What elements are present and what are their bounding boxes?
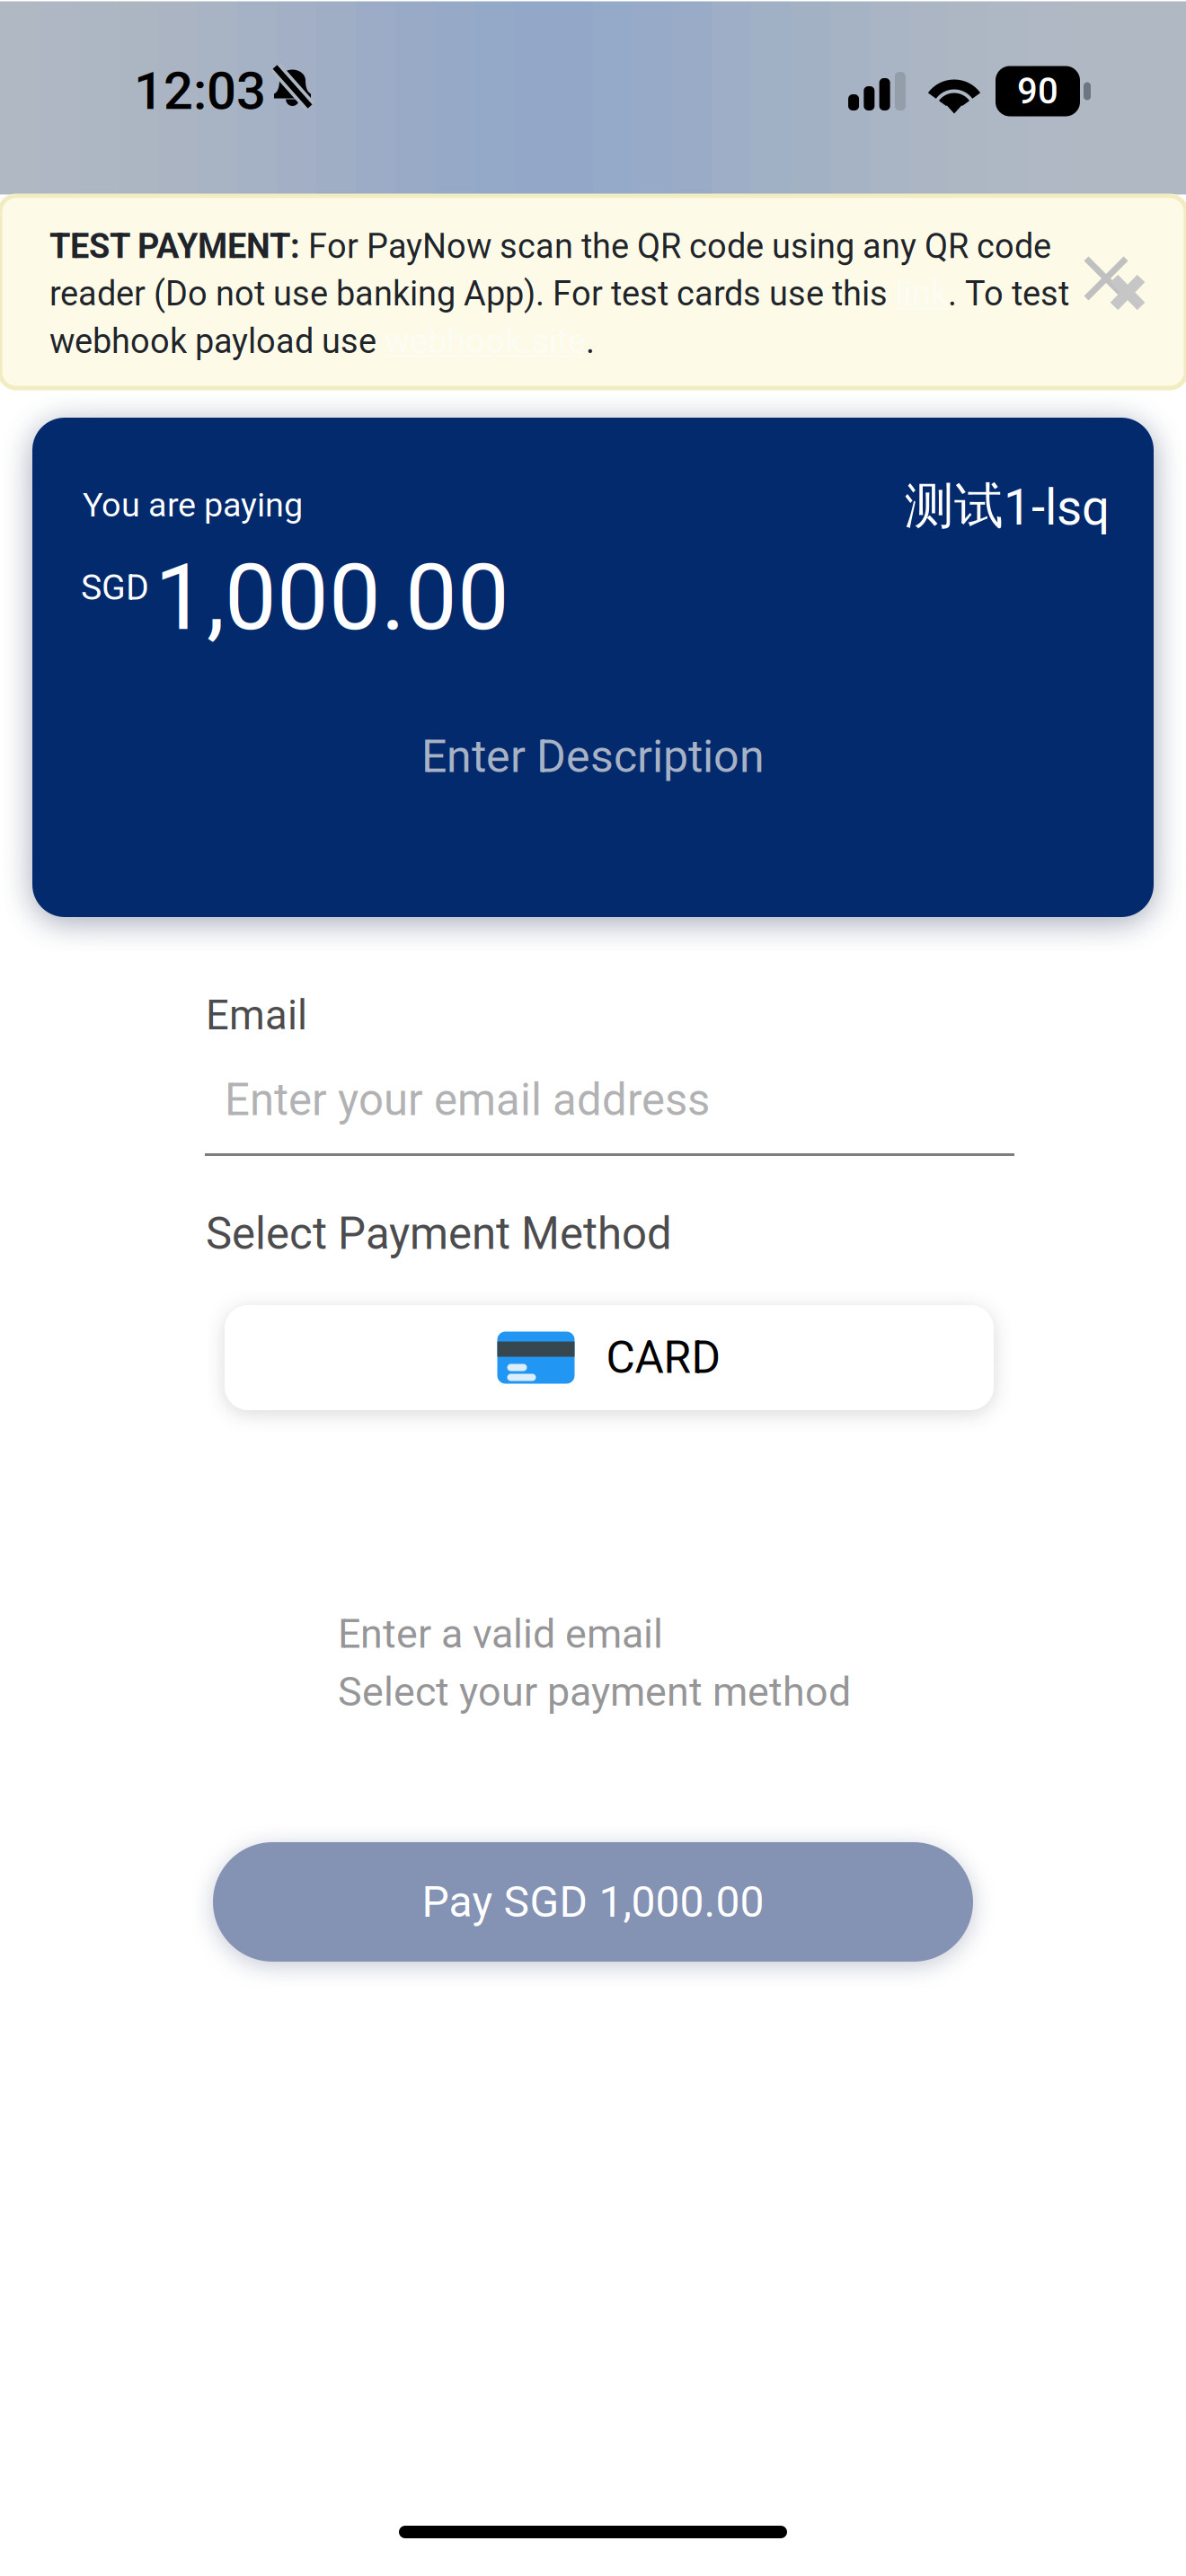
staticText: 90 [1017, 70, 1058, 112]
staticText: Enter Description [421, 730, 765, 783]
staticText: Select your payment method [338, 1668, 851, 1716]
staticText: Select Payment Method [206, 1208, 672, 1260]
staticText: Pay SGD 1,000.00 [422, 1877, 764, 1927]
staticText: TEST PAYMENT: For PayNow scan the QR cod… [49, 226, 1069, 361]
staticText: Email [206, 992, 307, 1039]
button[interactable]: CARD [225, 1305, 994, 1410]
staticText: 12:03 [134, 61, 266, 122]
staticText: Enter your email address [225, 1074, 710, 1126]
staticText: CARD [606, 1331, 721, 1384]
staticText: You are paying [83, 485, 303, 525]
staticText: 测试1-lsq [905, 475, 1110, 537]
staticText: 1,000.00 [155, 543, 509, 651]
staticText: SGD [81, 567, 149, 608]
button[interactable]: Dismiss [0, 196, 1182, 346]
staticText: Enter a valid email [338, 1610, 663, 1658]
button[interactable]: Pay SGD 1,000.00 [213, 1842, 973, 1962]
